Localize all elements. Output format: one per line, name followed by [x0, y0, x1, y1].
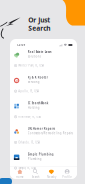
button[interactable]: Rj & K Rooter — [10, 76, 77, 102]
button[interactable]: Home — [12, 169, 28, 179]
staticText: Nearby — [47, 175, 56, 179]
button[interactable]: Real Estate Lawn — [10, 51, 77, 76]
staticText: Contractors/Remodeling Repairs — [28, 131, 73, 135]
staticText: Solutions — [28, 55, 41, 58]
staticText: Home — [16, 175, 24, 179]
staticText: Rj & K Rooter — [28, 76, 48, 79]
button[interactable]: Simple Plumbing — [10, 153, 77, 179]
staticText: IC SearchMonk — [28, 101, 49, 105]
staticText: Simple Plumbing — [28, 153, 54, 156]
staticText: Search — [28, 24, 50, 33]
staticText: Holding — [28, 106, 40, 109]
button[interactable]: UFL Homer Repairs — [10, 127, 77, 153]
staticText: Profile — [62, 175, 72, 179]
button[interactable]: Nearby — [43, 169, 59, 179]
staticText: Real Estate Lawn — [28, 50, 52, 54]
button[interactable]: Profile — [59, 169, 75, 179]
staticText: Servicing — [28, 80, 40, 84]
staticText: Or Just — [28, 15, 50, 24]
staticText: Riverview, FL, USA — [18, 115, 41, 118]
staticText: 12:09 — [16, 43, 25, 47]
staticText: Orlando, FL, USA — [18, 141, 40, 144]
staticText: Winter Park, FL, USA — [18, 64, 44, 67]
staticText: Tampa, FL, USA — [18, 166, 36, 170]
button[interactable]: IC SearchMonk — [10, 102, 77, 127]
staticText: Search — [32, 175, 40, 179]
staticText: Apollo, FL, USA — [18, 89, 39, 93]
staticText: UFL Homer Repairs — [28, 127, 55, 130]
staticText: Plumbing — [28, 157, 42, 161]
button[interactable]: Search — [28, 169, 44, 179]
